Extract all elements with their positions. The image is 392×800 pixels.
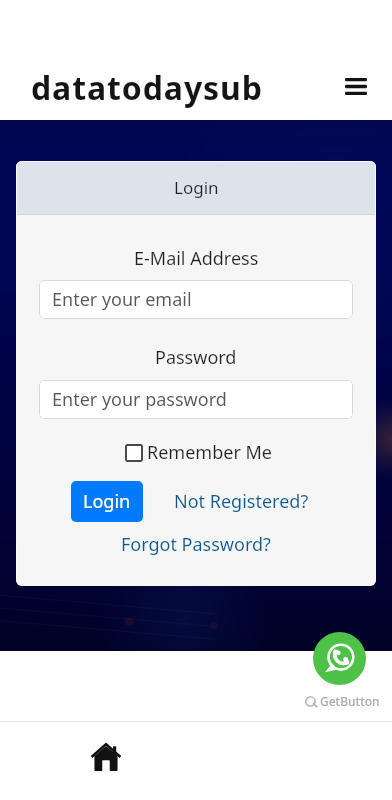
button[interactable]: Remember Me xyxy=(125,440,272,465)
button[interactable]: Home xyxy=(84,738,128,776)
staticText: Not Registered? xyxy=(174,489,309,514)
staticText: Remember Me xyxy=(147,440,272,465)
staticText: Login xyxy=(83,489,131,514)
button[interactable]: Forgot Password? xyxy=(115,526,277,563)
staticText: E-Mail Address xyxy=(134,246,259,271)
button[interactable]: Not Registered? xyxy=(168,483,315,520)
staticText: Forgot Password? xyxy=(121,532,271,557)
button[interactable]: Menu xyxy=(337,67,375,105)
staticText: datatodaysub xyxy=(31,66,263,110)
button[interactable]: Enter your password xyxy=(39,380,353,419)
staticText: Login xyxy=(174,176,219,199)
button[interactable]: Chat on WhatsApp xyxy=(313,632,366,685)
button[interactable]: Login xyxy=(71,481,143,522)
staticText: Password xyxy=(155,345,237,370)
staticText: Enter your password xyxy=(52,387,227,412)
staticText: Enter your email xyxy=(52,287,192,312)
staticText: GetButton xyxy=(320,693,380,709)
button[interactable]: Enter your email xyxy=(39,280,353,319)
